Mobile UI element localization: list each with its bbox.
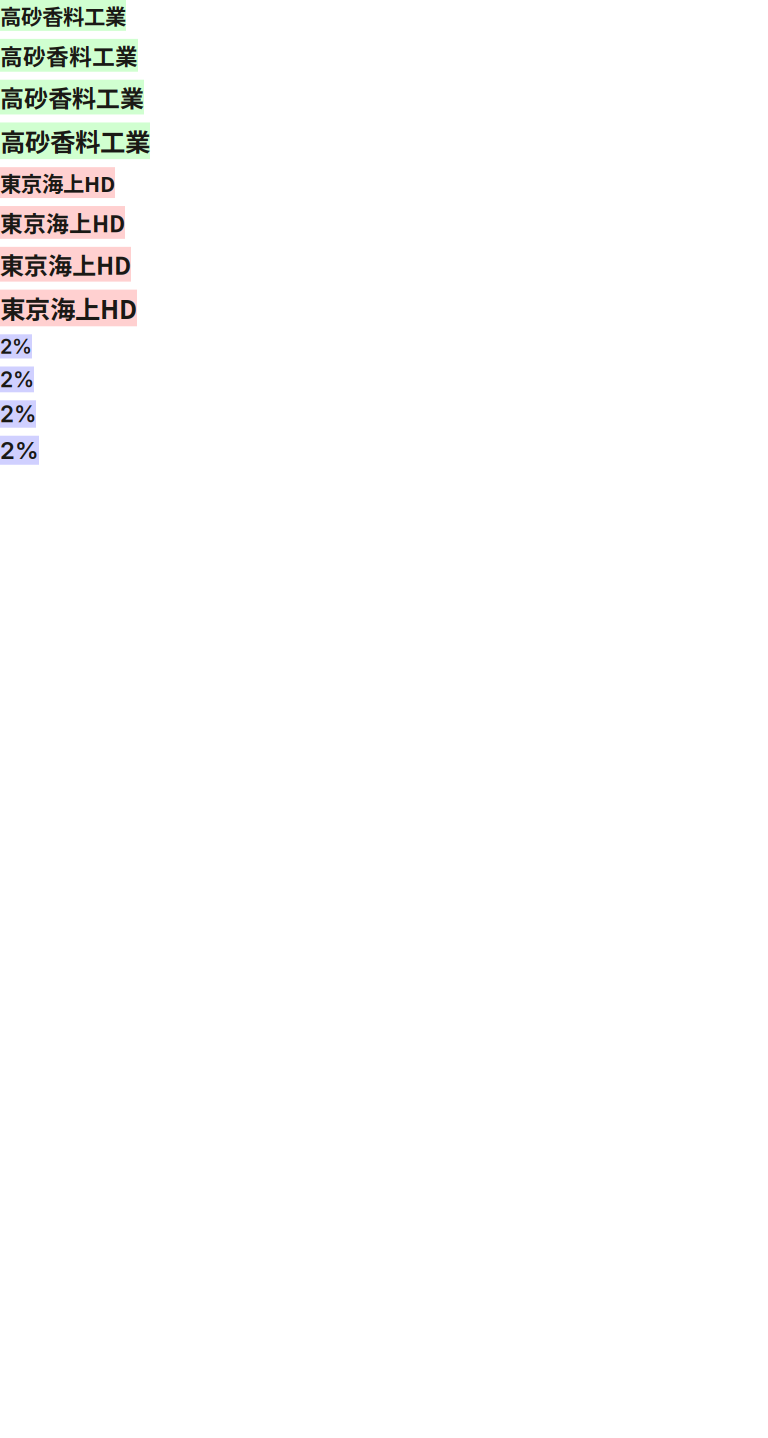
staticText: 高砂香料工業 [0, 80, 144, 114]
staticText: 2% [0, 366, 34, 392]
staticText: 東京海上HD [0, 167, 115, 198]
staticText: 高砂香料工業 [0, 0, 126, 31]
staticText: 高砂香料工業 [0, 39, 138, 72]
staticText: 東京海上HD [0, 206, 125, 239]
staticText: 2% [0, 334, 32, 358]
staticText: 2% [0, 436, 39, 465]
staticText: 東京海上HD [0, 290, 137, 326]
staticText: 高砂香料工業 [0, 122, 150, 159]
staticText: 東京海上HD [0, 247, 131, 282]
staticText: 2% [0, 400, 36, 428]
